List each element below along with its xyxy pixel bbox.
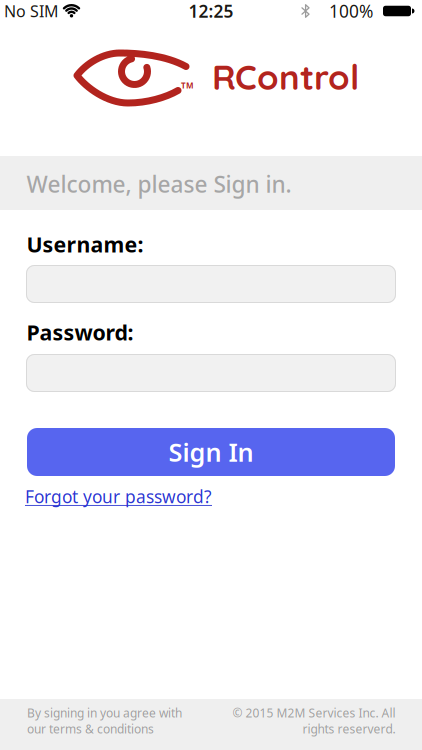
staticText: TM (181, 80, 194, 91)
button[interactable]: Sign In (27, 428, 395, 476)
staticText: By signing in you agree with our terms &… (27, 705, 182, 737)
staticText: Username: (26, 230, 143, 258)
staticText: Sign In (168, 435, 253, 469)
staticText: Forgot your password? (25, 485, 212, 508)
staticText: 100% (329, 0, 373, 22)
staticText: No SIM (4, 0, 59, 22)
staticText: 12:25 (188, 0, 233, 22)
staticText: Welcome, please Sign in. (26, 169, 291, 199)
staticText: RControl (212, 55, 359, 98)
button[interactable]: Forgot your password? (25, 485, 212, 508)
staticText: Password: (26, 318, 133, 346)
staticText: © 2015 M2M Services Inc. All rights rese… (232, 705, 395, 737)
